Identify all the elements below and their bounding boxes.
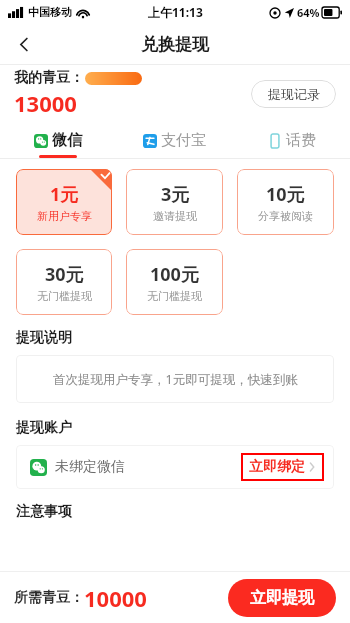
- button[interactable]: Back: [6, 26, 42, 62]
- button[interactable]: 1元: [16, 169, 112, 235]
- staticText: 1元: [50, 182, 79, 207]
- staticText: 中国移动: [28, 5, 72, 19]
- staticText: 话费: [286, 131, 316, 150]
- staticText: 微信: [52, 131, 82, 150]
- staticText: 10元: [266, 182, 305, 207]
- staticText: 我的青豆：: [14, 69, 84, 87]
- staticText: 上午11:13: [148, 4, 203, 20]
- button[interactable]: 立即提现: [228, 579, 336, 617]
- button[interactable]: 支付宝: [116, 122, 233, 158]
- button[interactable]: 提现记录: [251, 80, 336, 108]
- staticText: 分享被阅读: [258, 209, 313, 223]
- staticText: 3元: [161, 182, 190, 207]
- button[interactable]: 未绑定微信: [16, 445, 334, 489]
- staticText: 立即提现: [250, 588, 314, 608]
- button[interactable]: 3元: [126, 169, 223, 235]
- button[interactable]: 100元: [126, 249, 223, 315]
- staticText: 13000: [14, 88, 77, 118]
- staticText: 新用户专享: [37, 209, 92, 223]
- button[interactable]: 10元: [237, 169, 334, 235]
- staticText: 立即绑定: [249, 458, 305, 476]
- staticText: 10000: [84, 583, 147, 613]
- staticText: 首次提现用户专享，1元即可提现，快速到账: [53, 371, 298, 388]
- staticText: 未绑定微信: [55, 458, 125, 476]
- staticText: 100元: [150, 262, 199, 287]
- staticText: 邀请提现: [153, 209, 197, 223]
- staticText: 支付宝: [161, 131, 206, 150]
- staticText: 64%: [297, 5, 320, 20]
- staticText: 无门槛提现: [37, 289, 92, 303]
- staticText: 注意事项: [16, 503, 72, 521]
- staticText: 30元: [45, 262, 84, 287]
- staticText: 无门槛提现: [147, 289, 202, 303]
- staticText: 兑换提现: [141, 34, 209, 55]
- button[interactable]: 话费: [233, 122, 350, 158]
- staticText: 提现账户: [16, 419, 72, 437]
- staticText: 提现记录: [268, 86, 320, 102]
- staticText: 提现说明: [16, 329, 72, 347]
- button[interactable]: 微信: [0, 122, 116, 158]
- button[interactable]: 30元: [16, 249, 112, 315]
- staticText: 所需青豆：: [14, 589, 84, 607]
